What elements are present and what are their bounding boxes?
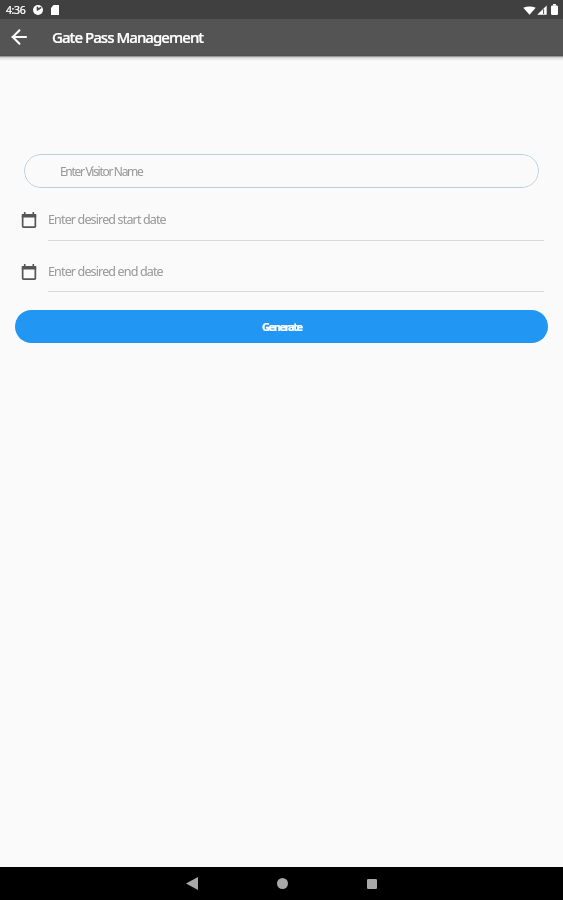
button[interactable]: Home bbox=[251, 867, 313, 900]
staticText: Generate bbox=[262, 319, 302, 334]
button[interactable]: Enter Visitor Name bbox=[24, 154, 539, 188]
staticText: Enter desired start date bbox=[48, 211, 166, 228]
staticText: Enter Visitor Name bbox=[60, 163, 143, 179]
staticText: Enter desired end date bbox=[48, 263, 163, 280]
button[interactable]: Generate bbox=[15, 310, 548, 343]
button[interactable]: Back bbox=[161, 867, 223, 900]
button[interactable]: Recent apps bbox=[341, 867, 403, 900]
button[interactable]: Enter desired start date bbox=[0, 209, 563, 241]
staticText: 4:36 bbox=[6, 3, 26, 17]
button[interactable]: Enter desired end date bbox=[0, 261, 563, 292]
button[interactable]: Back bbox=[0, 19, 38, 55]
staticText: Gate Pass Management bbox=[52, 27, 204, 47]
